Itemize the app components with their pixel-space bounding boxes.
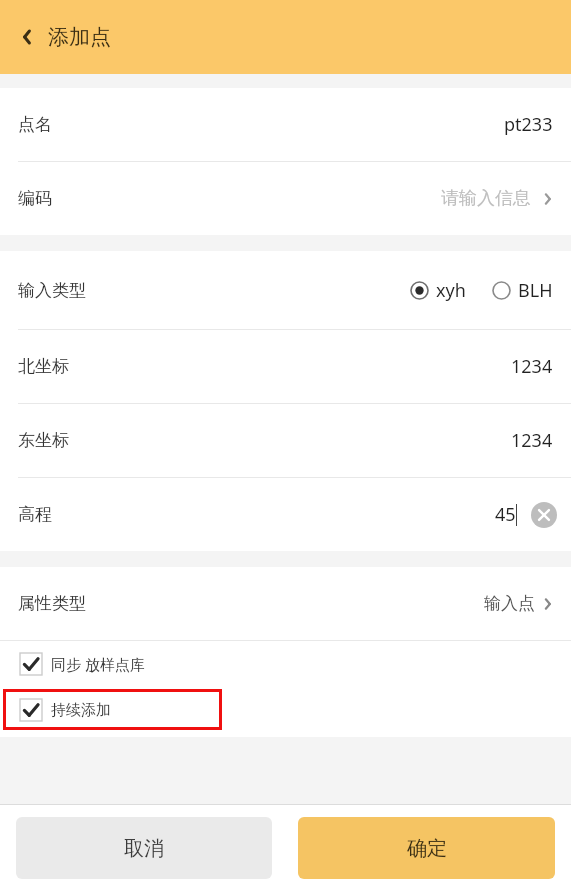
staticText: 确定: [407, 836, 447, 861]
button[interactable]: 编码: [0, 162, 571, 235]
staticText: 东坐标: [18, 430, 69, 451]
button[interactable]: 属性类型: [0, 567, 571, 640]
button[interactable]: 北坐标: [0, 330, 571, 403]
staticText: 高程: [18, 504, 52, 525]
staticText: xyh: [436, 278, 466, 303]
staticText: 1234: [511, 354, 553, 379]
button[interactable]: Back: [10, 20, 44, 54]
button[interactable]: Clear: [531, 502, 557, 528]
staticText: BLH: [518, 278, 553, 303]
staticText: 添加点: [48, 24, 111, 50]
button[interactable]: 取消: [16, 817, 272, 879]
staticText: 北坐标: [18, 356, 69, 377]
staticText: 点名: [18, 114, 52, 135]
button[interactable]: BLH: [492, 278, 553, 303]
staticText: 持续添加: [51, 701, 111, 720]
staticText: 取消: [124, 836, 164, 861]
button[interactable]: 同步 放样点库: [0, 641, 571, 687]
button[interactable]: 东坐标: [0, 404, 571, 477]
staticText: 输入点: [484, 593, 535, 614]
button[interactable]: 点名: [0, 88, 571, 161]
staticText: 属性类型: [18, 593, 86, 614]
staticText: 1234: [511, 428, 553, 453]
staticText: 45: [495, 502, 516, 527]
button[interactable]: 确定: [298, 817, 555, 879]
staticText: pt233: [504, 112, 553, 137]
button[interactable]: xyh: [410, 278, 466, 303]
button[interactable]: 持续添加: [0, 687, 571, 733]
staticText: 请输入信息: [441, 187, 531, 210]
staticText: 同步 放样点库: [51, 654, 145, 674]
staticText: 编码: [18, 188, 52, 209]
staticText: 输入类型: [18, 280, 86, 301]
